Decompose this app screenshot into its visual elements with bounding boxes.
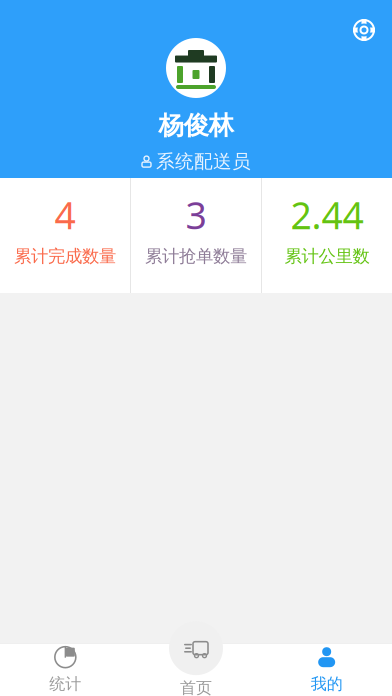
staticText: 2.44 xyxy=(290,190,363,240)
button[interactable]: 2.44 xyxy=(262,178,392,293)
staticText: 我的 xyxy=(311,674,343,694)
button[interactable]: 3 xyxy=(131,178,261,293)
button[interactable]: 首页 xyxy=(131,623,261,696)
button[interactable]: 我的 xyxy=(261,623,392,696)
button[interactable]: 4 xyxy=(0,178,130,293)
staticText: 累计公里数 xyxy=(284,246,369,267)
staticText: 3 xyxy=(185,190,206,240)
staticText: 系统配送员 xyxy=(156,150,251,173)
staticText: 累计抢单数量 xyxy=(145,246,247,267)
staticText: 累计完成数量 xyxy=(14,246,116,267)
button[interactable]: 统计 xyxy=(0,623,131,696)
staticText: 杨俊林 xyxy=(158,110,233,141)
staticText: 4 xyxy=(54,190,75,240)
button[interactable]: Settings xyxy=(342,8,386,52)
staticText: 首页 xyxy=(180,678,212,696)
staticText: 统计 xyxy=(49,674,81,694)
